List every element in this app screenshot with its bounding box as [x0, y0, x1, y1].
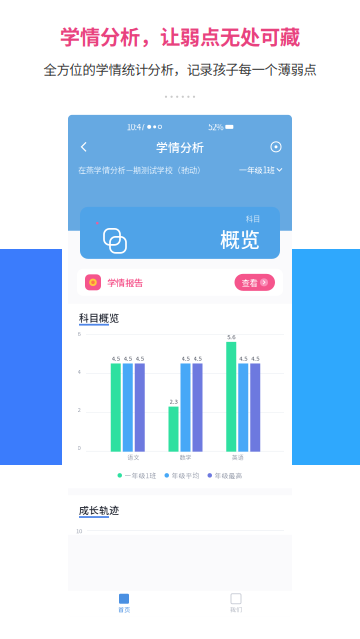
staticText: 4.5	[239, 354, 247, 362]
staticText: 查看	[241, 276, 257, 288]
staticText: 10:47	[127, 121, 145, 133]
staticText: 科目概览	[79, 310, 119, 325]
staticText: 2.3	[169, 397, 177, 406]
staticText: 在燕学情分析—期测试学校（驰动）	[78, 164, 205, 176]
staticText: 一年级1班	[239, 164, 275, 176]
staticText: 4.5	[112, 354, 120, 362]
staticText: 首页	[118, 605, 130, 614]
staticText: 学情报告	[107, 276, 143, 289]
staticText: 4.5	[181, 354, 189, 362]
button[interactable]: Settings	[267, 138, 285, 156]
button[interactable]: 学情报告	[77, 269, 283, 296]
staticText: 4.5	[251, 354, 259, 362]
staticText: 6	[77, 329, 80, 338]
button[interactable]: 我们	[180, 591, 292, 617]
staticText: 科目	[246, 213, 260, 224]
staticText: 成长轨迹	[79, 502, 119, 517]
staticText: 2	[77, 405, 80, 414]
staticText: 概览	[220, 224, 260, 253]
staticText: 英语	[232, 453, 244, 462]
staticText: 学情分析	[156, 138, 204, 156]
staticText: 5.6	[227, 332, 235, 341]
staticText: 4.5	[193, 354, 201, 362]
button[interactable]: Back	[75, 138, 93, 156]
staticText: 年级平均	[171, 470, 199, 480]
staticText: 语文	[127, 453, 139, 462]
staticText: 10	[76, 526, 82, 535]
staticText: 学情分析，让弱点无处可藏	[60, 21, 300, 50]
staticText: 4.5	[124, 354, 132, 362]
staticText: 年级最高	[214, 470, 242, 480]
button[interactable]: 首页	[68, 591, 180, 617]
staticText: 52%	[208, 121, 223, 133]
staticText: 一年级1班	[124, 470, 156, 480]
staticText: 全方位的学情统计分析，记录孩子每一个薄弱点	[43, 59, 316, 79]
staticText: 我们	[230, 605, 242, 614]
button[interactable]: 科目	[80, 207, 280, 259]
staticText: 0	[77, 443, 80, 452]
button[interactable]: 一年级1班	[239, 164, 282, 176]
staticText: 数学	[179, 453, 191, 462]
staticText: 4	[77, 367, 80, 376]
staticText: 4.5	[136, 354, 144, 362]
